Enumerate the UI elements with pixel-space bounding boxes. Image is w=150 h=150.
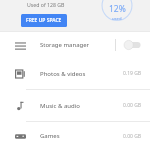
other: Music and audio <box>15 101 25 111</box>
other: Storage manager <box>15 40 26 51</box>
staticText: 0.00 GB <box>123 102 142 109</box>
button[interactable]: Storage manager toggle <box>116 32 150 58</box>
button[interactable]: Music and audio <box>0 90 150 121</box>
staticText: 12% <box>109 3 126 15</box>
staticText: Music & audio <box>40 102 80 110</box>
other: Games <box>15 131 26 142</box>
button[interactable]: FREE UP SPACE <box>21 14 67 27</box>
other: Photos and videos <box>15 69 25 79</box>
staticText: 0.00 GB <box>123 133 142 140</box>
staticText: Games <box>40 132 60 140</box>
staticText: Used of 128 GB <box>27 1 65 8</box>
button[interactable]: Photos and videos <box>0 58 150 89</box>
staticText: FREE UP SPACE <box>26 17 62 24</box>
button[interactable]: Games <box>0 122 150 150</box>
button[interactable]: Storage manager <box>0 32 150 58</box>
staticText: used <box>112 16 122 21</box>
staticText: 0.19 GB <box>123 70 142 77</box>
staticText: Photos & videos <box>40 70 86 78</box>
staticText: Storage manager <box>40 41 90 49</box>
